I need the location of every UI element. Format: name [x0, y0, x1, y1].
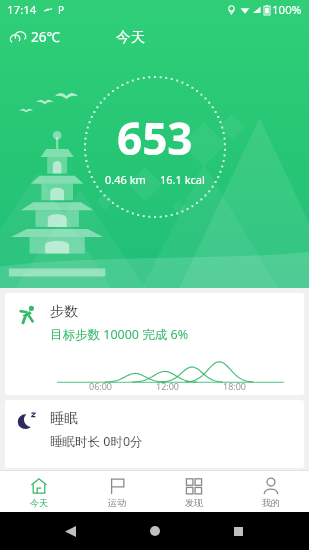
- button[interactable]: Home: [142, 518, 168, 544]
- staticText: 100%: [272, 2, 302, 18]
- button[interactable]: 今天: [0, 473, 78, 511]
- staticText: 我的: [262, 497, 280, 508]
- button[interactable]: 步数: [5, 293, 304, 395]
- button[interactable]: 我的: [232, 473, 309, 511]
- staticText: 18:00: [223, 380, 247, 392]
- staticText: 0.46 km: [105, 172, 146, 187]
- button[interactable]: 今天: [110, 25, 151, 49]
- button[interactable]: 发现: [155, 473, 232, 511]
- button[interactable]: 睡眠: [5, 400, 304, 468]
- button[interactable]: 运动: [78, 473, 155, 511]
- button[interactable]: Back: [57, 518, 84, 545]
- button[interactable]: Weather: [8, 26, 62, 48]
- staticText: 运动: [108, 497, 126, 508]
- staticText: 睡眠: [50, 410, 78, 428]
- button[interactable]: Recents: [226, 519, 251, 544]
- staticText: 今天: [116, 28, 145, 46]
- staticText: 步数: [50, 303, 78, 321]
- staticText: 16.1 kcal: [160, 172, 205, 187]
- staticText: 06:00: [89, 380, 113, 392]
- staticText: 目标步数 10000 完成 6%: [50, 326, 189, 343]
- staticText: 17:14: [7, 2, 37, 18]
- staticText: P: [58, 3, 65, 17]
- staticText: 睡眠时长 0时0分: [50, 433, 143, 450]
- staticText: 26℃: [31, 28, 60, 46]
- staticText: 发现: [185, 497, 203, 508]
- staticText: 今天: [30, 497, 48, 508]
- staticText: 12:00: [156, 380, 180, 392]
- staticText: 653: [117, 108, 193, 168]
